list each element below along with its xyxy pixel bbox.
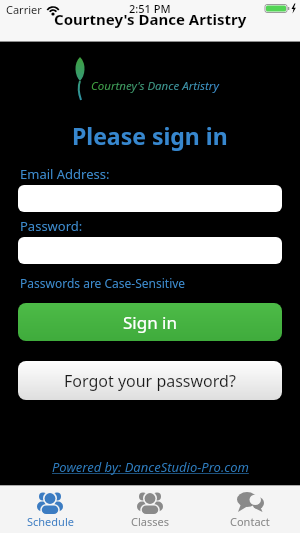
- staticText: Please sign in: [72, 120, 228, 151]
- button[interactable]: [18, 185, 282, 212]
- staticText: Password:: [20, 217, 83, 235]
- staticText: Schedule: [27, 514, 74, 529]
- staticText: Passwords are Case-Sensitive: [20, 275, 186, 291]
- staticText: Sign in: [123, 311, 177, 334]
- staticText: Courtney's Dance Artistry: [91, 78, 219, 94]
- button[interactable]: Sign in: [18, 303, 282, 341]
- staticText: 2:51 PM: [129, 1, 171, 16]
- staticText: Classes: [131, 514, 169, 529]
- button[interactable]: [18, 237, 282, 264]
- button[interactable]: Schedule: [0, 486, 100, 533]
- staticText: Email Address:: [20, 165, 110, 183]
- staticText: Contact: [230, 514, 270, 529]
- staticText: Forgot your password?: [64, 370, 236, 392]
- button[interactable]: Contact: [200, 486, 300, 533]
- button[interactable]: Forgot your password?: [18, 361, 282, 400]
- button[interactable]: Powered by: DanceStudio-Pro.com: [52, 458, 249, 476]
- staticText: Carrier: [6, 2, 42, 17]
- staticText: Courtney's Dance Artistry: [54, 9, 247, 29]
- button[interactable]: Classes: [100, 486, 200, 533]
